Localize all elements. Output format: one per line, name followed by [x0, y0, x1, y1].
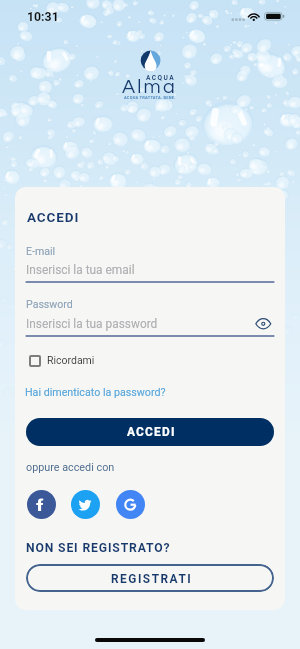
- staticText: REGISTRATI: [111, 572, 193, 586]
- button[interactable]: Mostra password: [254, 315, 273, 333]
- button[interactable]: Campo password: [26, 312, 275, 337]
- staticText: Inserisci la tua password: [26, 317, 158, 331]
- staticText: ACCEDI: [127, 425, 176, 439]
- staticText: Alma: [122, 77, 177, 97]
- button[interactable]: Accedi con Twitter: [71, 490, 100, 519]
- staticText: oppure accedi con: [26, 461, 115, 474]
- staticText: E-mail: [26, 245, 56, 257]
- staticText: ACCEDI: [27, 209, 80, 225]
- staticText: Ricordami: [47, 354, 95, 366]
- button[interactable]: Ricordami: [26, 351, 98, 370]
- button[interactable]: ACCEDI: [26, 418, 274, 446]
- staticText: Hai dimenticato la password?: [25, 386, 166, 399]
- button[interactable]: REGISTRATI: [26, 564, 274, 592]
- staticText: Password: [26, 298, 73, 310]
- button[interactable]: Accedi con Google: [116, 490, 145, 519]
- staticText: ACQUA: [146, 74, 176, 82]
- staticText: ACQUA TRATTATA. BENE.: [124, 95, 176, 100]
- staticText: Inserisci la tua email: [26, 263, 135, 277]
- button[interactable]: Campo e-mail: [26, 258, 275, 283]
- button[interactable]: Accedi con Facebook: [27, 490, 56, 519]
- staticText: 10:31: [27, 10, 59, 24]
- button[interactable]: Hai dimenticato la password?: [25, 386, 166, 399]
- staticText: NON SEI REGISTRATO?: [26, 541, 171, 555]
